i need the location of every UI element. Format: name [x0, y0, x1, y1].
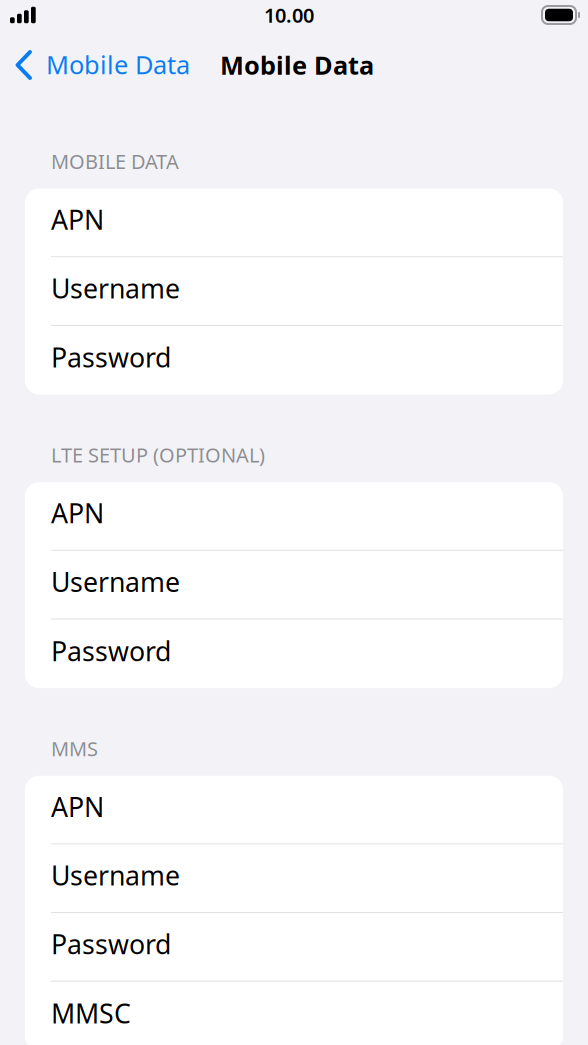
staticText: Password: [51, 633, 171, 668]
staticText: Mobile Data: [46, 48, 190, 81]
staticText: 10.00: [264, 2, 314, 28]
button[interactable]: Password: [25, 326, 563, 395]
staticText: Password: [51, 339, 171, 375]
button[interactable]: Username: [25, 551, 563, 619]
staticText: MMSC: [51, 995, 131, 1031]
button[interactable]: Password: [25, 619, 563, 688]
button[interactable]: Username: [25, 844, 563, 913]
staticText: Username: [51, 270, 180, 306]
staticText: Password: [51, 926, 171, 962]
staticText: Username: [51, 564, 180, 599]
button[interactable]: Password: [25, 913, 563, 982]
button[interactable]: Mobile Data: [0, 39, 200, 91]
button[interactable]: APN: [25, 482, 563, 551]
staticText: APN: [51, 495, 104, 531]
button[interactable]: Username: [25, 257, 563, 326]
staticText: Username: [51, 857, 180, 893]
button[interactable]: APN: [25, 189, 563, 257]
button[interactable]: MMSC: [25, 982, 563, 1045]
staticText: MMS: [51, 735, 98, 762]
staticText: MOBILE DATA: [51, 148, 179, 175]
button[interactable]: APN: [25, 776, 563, 844]
staticText: APN: [51, 202, 104, 237]
staticText: APN: [51, 789, 104, 824]
staticText: LTE SETUP (OPTIONAL): [51, 442, 265, 468]
staticText: Mobile Data: [220, 48, 374, 82]
